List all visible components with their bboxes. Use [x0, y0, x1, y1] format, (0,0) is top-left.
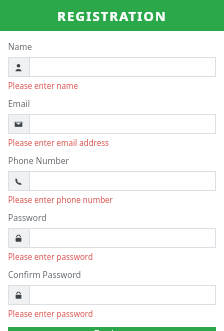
staticText: Name	[8, 41, 32, 53]
staticText: Phone Number	[8, 155, 69, 167]
other: Email	[8, 114, 29, 134]
staticText: REGISTRATION	[57, 7, 167, 25]
button[interactable]: Register	[8, 327, 216, 331]
button[interactable]: Name	[8, 57, 216, 77]
other: Name	[8, 57, 29, 77]
staticText: Please enter password	[8, 251, 93, 262]
staticText: Please enter phone number	[8, 194, 113, 205]
button[interactable]: Password	[8, 228, 216, 248]
button[interactable]: Phone number	[8, 171, 216, 191]
other: Confirm password	[8, 285, 29, 305]
button[interactable]: Email	[8, 114, 216, 134]
other: Password	[8, 228, 29, 248]
staticText: Please enter email address	[8, 137, 109, 148]
button[interactable]: Confirm password	[8, 285, 216, 305]
staticText: Please enter password	[8, 308, 93, 319]
staticText: Register	[94, 327, 131, 331]
staticText: Password	[8, 212, 47, 224]
staticText: Please enter name	[8, 80, 78, 91]
staticText: Confirm Password	[8, 269, 81, 281]
staticText: Email	[8, 98, 30, 110]
other: Phone number	[8, 171, 29, 191]
